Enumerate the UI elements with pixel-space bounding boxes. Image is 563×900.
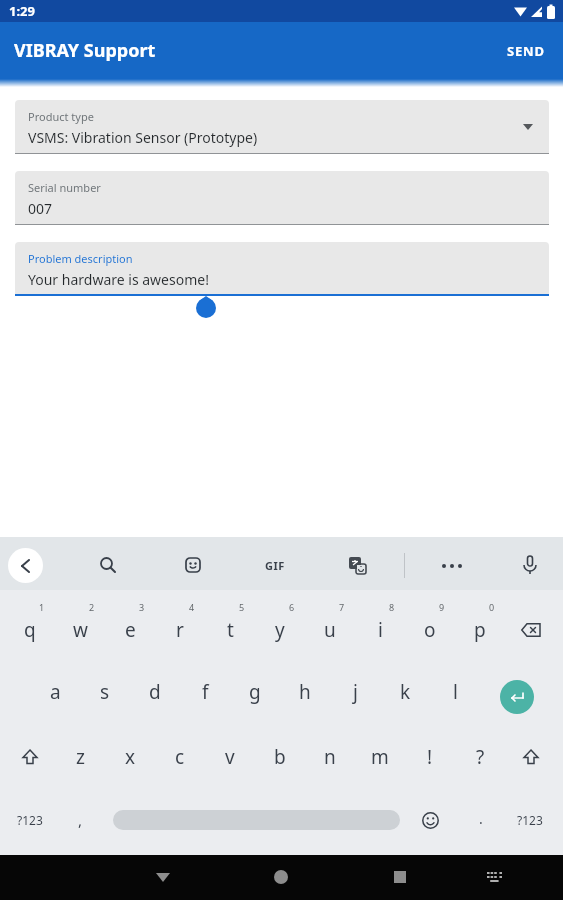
button[interactable] xyxy=(416,806,444,834)
button[interactable]: u xyxy=(306,615,354,645)
button[interactable]: 9 xyxy=(418,592,466,622)
staticText: GIF xyxy=(265,558,285,573)
button[interactable]: 0 xyxy=(468,592,516,622)
button[interactable]: t xyxy=(206,615,254,645)
button[interactable]: ?123 xyxy=(6,805,54,835)
staticText: . xyxy=(479,809,483,828)
staticText: h xyxy=(299,679,311,705)
button[interactable]: 6 xyxy=(268,592,316,622)
button[interactable]: f xyxy=(181,677,229,707)
staticText: u xyxy=(324,617,336,643)
button[interactable]: c xyxy=(156,742,204,772)
button[interactable]: p xyxy=(456,615,504,645)
button[interactable]: y xyxy=(256,615,304,645)
staticText: w xyxy=(73,617,88,643)
staticText: r xyxy=(176,617,184,643)
button[interactable]: 4 xyxy=(168,592,216,622)
staticText: Product type xyxy=(28,109,94,124)
staticText: 6 xyxy=(289,601,295,613)
button[interactable]: w xyxy=(56,615,104,645)
staticText: d xyxy=(149,679,161,705)
button[interactable]: , xyxy=(56,805,104,835)
button[interactable] xyxy=(507,615,555,645)
staticText: Your hardware is awesome! xyxy=(28,270,209,289)
staticText: o xyxy=(424,617,436,643)
button[interactable]: SEND xyxy=(499,34,553,68)
button[interactable]: v xyxy=(206,742,254,772)
button[interactable]: ? xyxy=(456,742,504,772)
button[interactable]: z xyxy=(56,742,104,772)
staticText: y xyxy=(275,617,285,643)
button[interactable]: k xyxy=(381,677,429,707)
staticText: ?123 xyxy=(17,812,43,828)
staticText: , xyxy=(78,810,83,830)
staticText: g xyxy=(249,679,261,705)
button[interactable]: Problem description xyxy=(15,242,549,296)
button[interactable]: o xyxy=(406,615,454,645)
button[interactable]: m xyxy=(356,742,404,772)
staticText: 1:29 xyxy=(9,2,35,20)
staticText: ?123 xyxy=(517,812,543,828)
button[interactable] xyxy=(261,857,301,897)
button[interactable] xyxy=(94,551,122,579)
button[interactable] xyxy=(179,551,207,579)
staticText: SEND xyxy=(507,42,545,60)
button[interactable]: GIF xyxy=(258,551,292,579)
staticText: c xyxy=(175,744,185,770)
staticText: i xyxy=(378,617,383,643)
button[interactable] xyxy=(8,548,43,583)
button[interactable]: 2 xyxy=(68,592,116,622)
button[interactable] xyxy=(143,857,183,897)
button[interactable]: q xyxy=(6,615,54,645)
staticText: 1 xyxy=(39,601,45,613)
button[interactable] xyxy=(113,810,400,830)
staticText: 0 xyxy=(489,601,495,613)
staticText: e xyxy=(125,617,136,643)
button[interactable]: ?123 xyxy=(506,805,554,835)
staticText: ! xyxy=(427,744,433,770)
staticText: f xyxy=(202,679,209,705)
button[interactable]: d xyxy=(131,677,179,707)
staticText: a xyxy=(50,679,61,705)
button[interactable]: l xyxy=(431,677,479,707)
button[interactable] xyxy=(474,857,514,897)
staticText: Problem description xyxy=(28,251,133,266)
button[interactable] xyxy=(380,857,420,897)
staticText: v xyxy=(225,744,235,770)
button[interactable]: 1 xyxy=(18,592,66,622)
button[interactable]: i xyxy=(356,615,404,645)
button[interactable]: j xyxy=(331,677,379,707)
staticText: 7 xyxy=(339,601,345,613)
button[interactable]: r xyxy=(156,615,204,645)
staticText: VSMS: Vibration Sensor (Prototype) xyxy=(28,128,258,147)
button[interactable]: 3 xyxy=(118,592,166,622)
button[interactable]: b xyxy=(256,742,304,772)
button[interactable]: e xyxy=(106,615,154,645)
button[interactable]: Serial number xyxy=(15,171,549,225)
staticText: t xyxy=(227,617,234,643)
button[interactable]: 7 xyxy=(318,592,366,622)
button[interactable]: 5 xyxy=(218,592,266,622)
button[interactable]: a xyxy=(31,677,79,707)
staticText: m xyxy=(371,744,389,770)
button[interactable]: . xyxy=(457,803,505,833)
button[interactable]: n xyxy=(306,742,354,772)
button[interactable]: Product type xyxy=(15,100,549,154)
button[interactable]: s xyxy=(81,677,129,707)
button[interactable]: ! xyxy=(406,742,454,772)
staticText: l xyxy=(453,679,458,705)
button[interactable]: 8 xyxy=(368,592,416,622)
button[interactable] xyxy=(500,680,534,714)
button[interactable]: h xyxy=(281,677,329,707)
button[interactable]: x xyxy=(106,742,154,772)
staticText: ? xyxy=(476,744,485,770)
staticText: b xyxy=(274,744,286,770)
button[interactable] xyxy=(6,742,54,772)
button[interactable]: g xyxy=(231,677,279,707)
button[interactable] xyxy=(507,742,555,772)
staticText: 2 xyxy=(89,601,95,613)
button[interactable] xyxy=(343,551,371,579)
staticText: z xyxy=(76,744,85,770)
staticText: s xyxy=(100,679,110,705)
button[interactable] xyxy=(516,551,544,579)
